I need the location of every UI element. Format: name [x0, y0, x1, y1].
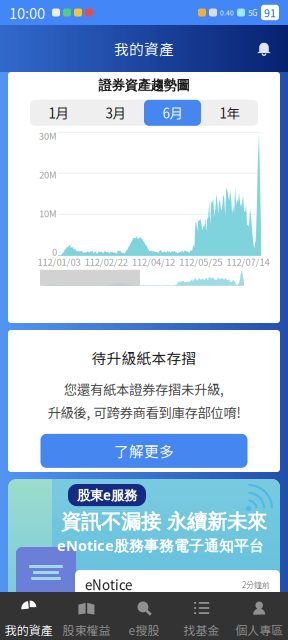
staticText: 10M: [39, 206, 57, 220]
staticText: e搜股: [128, 621, 159, 638]
button[interactable]: 個人專區: [230, 592, 288, 640]
staticText: 1月: [48, 103, 68, 122]
staticText: 20M: [39, 168, 57, 181]
staticText: 112/07/14: [226, 255, 269, 268]
button[interactable]: 股東權益: [58, 592, 115, 640]
staticText: 30M: [39, 129, 57, 142]
staticText: 91: [264, 5, 276, 20]
button[interactable]: 6月: [144, 100, 201, 126]
staticText: 2分鐘前: [242, 579, 270, 590]
staticText: 股東權益: [62, 621, 110, 638]
staticText: 6月: [162, 103, 182, 122]
staticText: 您還有紙本證券存摺未升級,: [64, 379, 224, 398]
staticText: 證券資產趨勢圖: [98, 77, 189, 94]
staticText: 個人專區: [235, 621, 283, 638]
staticText: 0: [52, 245, 57, 258]
staticText: 我的資產: [114, 38, 174, 59]
staticText: 了解更多: [114, 440, 174, 461]
staticText: 3月: [105, 103, 125, 122]
staticText: 股東e服務: [77, 486, 137, 504]
staticText: 10:00: [9, 2, 45, 23]
button[interactable]: 1月: [30, 100, 87, 126]
staticText: 我的資產: [5, 621, 53, 638]
staticText: 112/05/25: [179, 255, 222, 268]
button[interactable]: e搜股: [115, 592, 173, 640]
button[interactable]: 我的資產: [0, 592, 58, 640]
staticText: 112/02/22: [85, 255, 128, 268]
staticText: 1年: [219, 103, 239, 122]
button[interactable]: 1年: [201, 100, 258, 126]
button[interactable]: 找基金: [173, 592, 230, 640]
staticText: 112/04/12: [132, 255, 175, 268]
button[interactable]: 了解更多: [40, 434, 247, 468]
button[interactable]: Notifications: [247, 31, 281, 65]
staticText: 找基金: [184, 621, 220, 638]
staticText: 升級後, 可跨券商看到庫存部位唷!: [47, 402, 240, 422]
staticText: 5G: [248, 7, 258, 18]
button[interactable]: 3月: [87, 100, 144, 126]
staticText: 待升級紙本存摺: [91, 347, 196, 368]
staticText: eNotice: [85, 575, 132, 594]
staticText: eNotice股務事務電子通知平台: [57, 535, 264, 555]
staticText: 112/01/03: [37, 255, 80, 268]
staticText: 0.40: [220, 8, 234, 17]
staticText: 資訊不漏接 永續新未來: [61, 509, 267, 534]
